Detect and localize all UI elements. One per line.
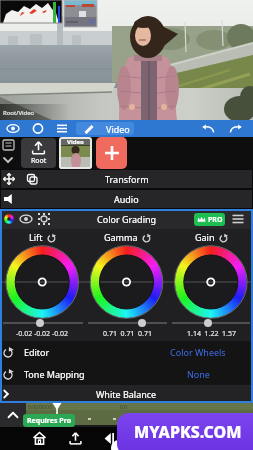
staticText: MYAPKS.COM bbox=[134, 421, 242, 443]
staticText: Editor bbox=[24, 346, 50, 358]
button[interactable]: Editor bbox=[0, 341, 253, 363]
button[interactable]: Audio bbox=[0, 189, 253, 209]
button[interactable]: Root bbox=[21, 138, 56, 168]
button[interactable] bbox=[64, 427, 86, 450]
staticText: Audio bbox=[114, 193, 139, 205]
staticText: Lift bbox=[29, 231, 43, 243]
staticText: 0.71 0.71 0.71 bbox=[103, 329, 152, 339]
button[interactable] bbox=[98, 427, 120, 450]
button[interactable]: Tone Mapping bbox=[0, 363, 253, 385]
staticText: Requires Pro bbox=[27, 416, 72, 426]
staticText: -0.02 -0.02 -0.02 bbox=[16, 329, 69, 339]
button[interactable]: Video bbox=[76, 122, 134, 135]
staticText: Color Grading bbox=[97, 213, 157, 225]
button[interactable]: White Balance bbox=[0, 385, 253, 403]
staticText: 0:0 bbox=[120, 404, 128, 411]
staticText: Root bbox=[31, 156, 47, 166]
button[interactable] bbox=[28, 427, 50, 450]
staticText: Gain bbox=[195, 231, 215, 243]
staticText: Video bbox=[106, 123, 130, 135]
button[interactable]: Color Grading bbox=[0, 209, 253, 229]
staticText: Tone Mapping bbox=[24, 368, 85, 380]
staticText: Gamma bbox=[104, 231, 138, 243]
button[interactable]: PRO bbox=[194, 213, 225, 226]
button[interactable]: MYAPKS.COM bbox=[117, 413, 253, 450]
staticText: White Balance bbox=[96, 388, 157, 400]
staticText: Video bbox=[67, 138, 84, 146]
staticText: None bbox=[187, 368, 210, 380]
staticText: 0:00:00:00 bbox=[28, 404, 53, 411]
button[interactable]: Requires Pro bbox=[23, 414, 75, 427]
staticText: Root/Video bbox=[3, 109, 35, 117]
staticText: PRO bbox=[208, 215, 223, 225]
staticText: Color Wheels bbox=[170, 346, 226, 358]
button[interactable]: Video bbox=[59, 137, 92, 169]
button[interactable]: Transform bbox=[0, 169, 253, 189]
staticText: 1.14 1.22 1.57 bbox=[187, 329, 236, 339]
staticText: Transform bbox=[105, 173, 149, 185]
button[interactable] bbox=[96, 137, 127, 169]
